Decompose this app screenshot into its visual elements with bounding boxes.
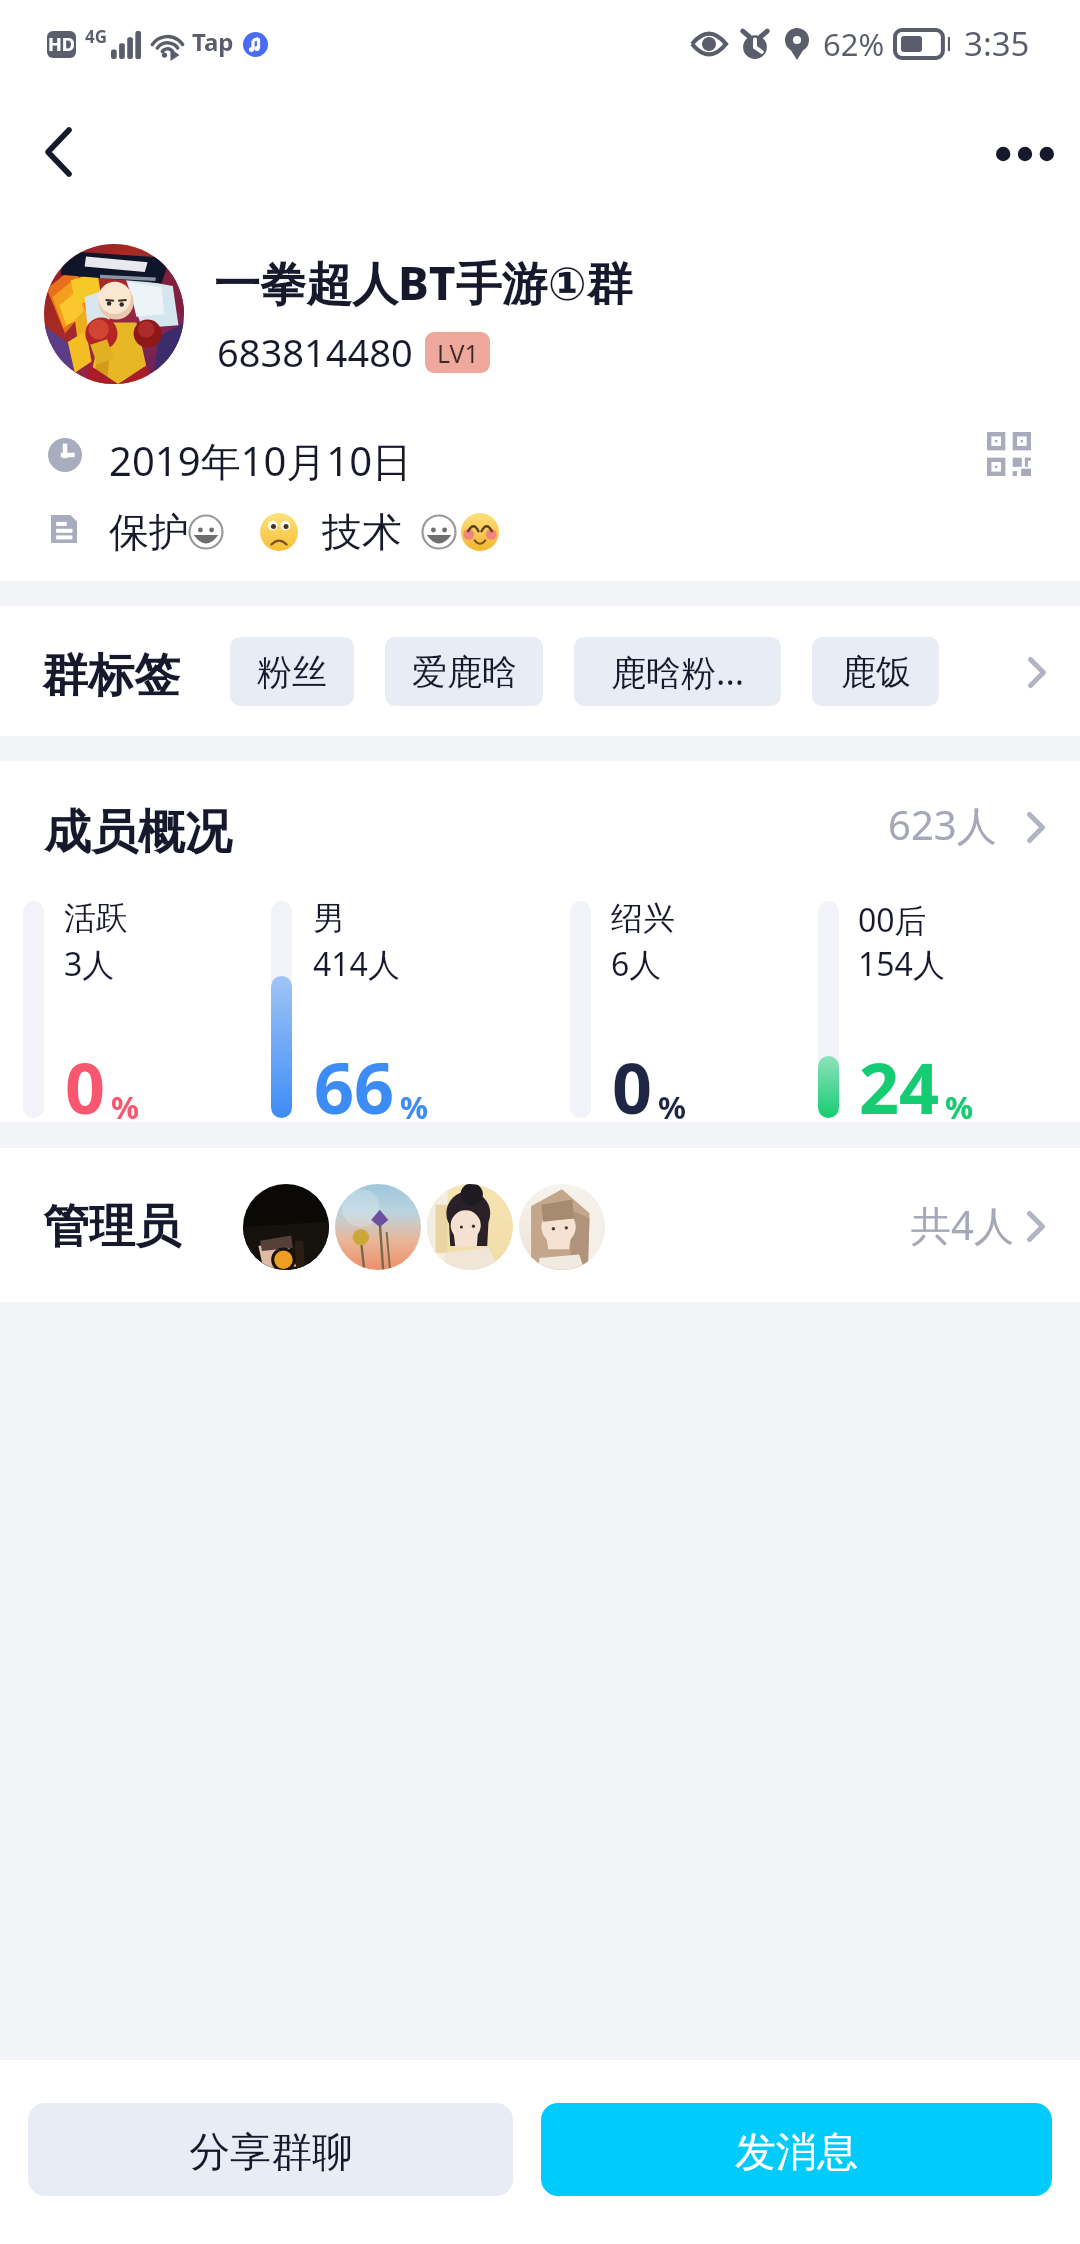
- staticText: 管理员: [43, 1198, 181, 1256]
- staticText: Tap: [192, 25, 234, 58]
- staticText: 0: [612, 1039, 653, 1134]
- button[interactable]: More options: [970, 99, 1080, 209]
- button[interactable]: 00后: [800, 881, 1062, 1122]
- staticText: 0: [65, 1039, 106, 1134]
- staticText: 绍兴: [611, 898, 675, 938]
- button[interactable]: Back: [8, 102, 108, 202]
- staticText: 154人: [858, 942, 945, 986]
- button[interactable]: 男: [253, 881, 552, 1122]
- button[interactable]: 活跃: [5, 881, 253, 1122]
- staticText: LV1: [437, 336, 479, 370]
- staticText: 发消息: [735, 2127, 858, 2179]
- staticText: 粉丝: [257, 650, 327, 694]
- button[interactable]: 爱鹿晗: [385, 637, 543, 706]
- staticText: 成员概况: [44, 803, 232, 862]
- staticText: 4G: [85, 25, 108, 48]
- staticText: 群标签: [42, 647, 180, 705]
- staticText: 爱鹿晗: [412, 650, 517, 694]
- staticText: %: [400, 1086, 428, 1128]
- button[interactable]: QR code: [965, 410, 1052, 497]
- button[interactable]: 发消息: [541, 2103, 1052, 2196]
- staticText: 保护: [109, 507, 189, 557]
- staticText: 683814480: [217, 326, 413, 378]
- staticText: 鹿饭: [841, 650, 911, 694]
- button[interactable]: 成员概况: [0, 761, 1080, 871]
- button[interactable]: More tags: [1002, 637, 1072, 707]
- staticText: 00后: [858, 898, 927, 942]
- staticText: 3人: [64, 942, 115, 986]
- staticText: 414人: [313, 942, 400, 986]
- staticText: 鹿晗粉...: [611, 648, 745, 696]
- staticText: 技术: [322, 507, 402, 557]
- staticText: 共4人: [911, 1197, 1014, 1252]
- staticText: 男: [313, 898, 345, 938]
- staticText: 24: [859, 1039, 940, 1134]
- staticText: 一拳超人BT手游①群: [214, 251, 633, 314]
- button[interactable]: 分享群聊: [28, 2103, 513, 2196]
- staticText: 活跃: [64, 898, 128, 938]
- button[interactable]: 绍兴: [552, 881, 800, 1122]
- button[interactable]: 鹿饭: [812, 637, 939, 706]
- staticText: 2019年10月10日: [109, 433, 413, 488]
- button[interactable]: 鹿晗粉...: [574, 637, 781, 706]
- staticText: 6人: [611, 942, 662, 986]
- staticText: %: [945, 1086, 973, 1128]
- staticText: 623人: [888, 797, 997, 852]
- button[interactable]: 粉丝: [230, 637, 354, 706]
- staticText: 62%: [823, 23, 885, 65]
- staticText: %: [111, 1086, 139, 1128]
- staticText: 66: [314, 1039, 395, 1134]
- staticText: HD: [48, 32, 75, 57]
- button[interactable]: 管理员: [0, 1148, 1080, 1302]
- staticText: 分享群聊: [189, 2127, 353, 2179]
- staticText: 3:35: [964, 21, 1030, 66]
- staticText: %: [658, 1086, 686, 1128]
